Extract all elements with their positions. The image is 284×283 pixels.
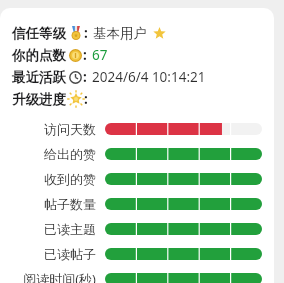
staticText: : bbox=[83, 46, 87, 64]
button[interactable]: 已读帖子 bbox=[12, 241, 266, 266]
staticText: 给出的赞 bbox=[44, 146, 96, 162]
button[interactable]: 已读主题 bbox=[12, 216, 266, 241]
staticText: : bbox=[83, 68, 87, 86]
staticText: 信任等级 bbox=[12, 25, 66, 42]
button[interactable]: 给出的赞 bbox=[12, 141, 266, 166]
button[interactable]: 阅读时间(秒) bbox=[12, 266, 266, 283]
button[interactable]: 访问天数 bbox=[12, 116, 266, 141]
staticText: : bbox=[84, 90, 88, 108]
staticText: 基本用户 bbox=[93, 25, 147, 42]
button[interactable]: 最近活跃 bbox=[12, 66, 266, 88]
button[interactable]: 信任等级 bbox=[12, 22, 266, 44]
button[interactable]: 你的点数 bbox=[12, 44, 266, 66]
staticText: 访问天数 bbox=[44, 121, 96, 137]
staticText: 67 bbox=[92, 46, 108, 64]
button[interactable]: 收到的赞 bbox=[12, 166, 266, 191]
staticText: 2024/6/4 10:14:21 bbox=[92, 68, 206, 86]
staticText: 升级进度 bbox=[12, 91, 66, 108]
button[interactable]: 升级进度 bbox=[12, 88, 266, 110]
staticText: 你的点数 bbox=[12, 47, 66, 64]
staticText: 已读主题 bbox=[44, 221, 96, 237]
button[interactable]: 帖子数量 bbox=[12, 191, 266, 216]
staticText: 收到的赞 bbox=[44, 171, 96, 187]
staticText: 已读帖子 bbox=[44, 246, 96, 262]
staticText: 最近活跃 bbox=[12, 69, 66, 86]
staticText: 阅读时间(秒) bbox=[23, 270, 96, 283]
staticText: 帖子数量 bbox=[44, 196, 96, 212]
staticText: : bbox=[84, 24, 88, 42]
